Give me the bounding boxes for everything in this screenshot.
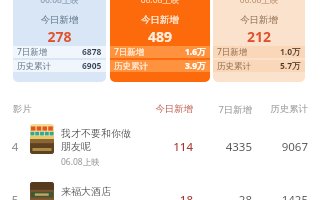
button[interactable]: 06.08上映 [213, 0, 305, 82]
staticText: 18 [133, 192, 193, 200]
staticText: 06.08上映 [13, 0, 106, 6]
staticText: 7日新增 [114, 46, 185, 58]
staticText: 6905 [82, 60, 102, 72]
staticText: 278 [13, 27, 106, 46]
staticText: 历史累计 [248, 103, 308, 115]
staticText: 来福大酒店 [61, 185, 111, 198]
staticText: 今日新增 [13, 14, 106, 26]
staticText: 1425 [248, 192, 308, 200]
staticText: 28 [192, 192, 252, 200]
staticText: 212 [213, 27, 305, 46]
staticText: 7日新增 [192, 103, 252, 116]
staticText: 5.7万 [280, 60, 301, 72]
staticText: 7日新增 [17, 46, 82, 58]
staticText: 6878 [82, 46, 102, 58]
staticText: 5 [0, 192, 30, 200]
staticText: 历史累计 [114, 61, 185, 72]
staticText: 影片 [13, 103, 32, 115]
staticText: 489 [110, 27, 210, 46]
staticText: 3.9万 [185, 60, 206, 72]
button[interactable]: 5 [0, 175, 320, 200]
staticText: 1.0万 [280, 46, 301, 58]
button[interactable]: 06.08上映 [110, 0, 210, 82]
staticText: 06.08上映 [213, 0, 305, 6]
staticText: 4 [0, 139, 30, 155]
staticText: 4335 [192, 139, 252, 155]
button[interactable]: 06.08上映 [13, 0, 106, 82]
staticText: 今日新增 [213, 14, 305, 26]
staticText: 06.08上映 [110, 0, 210, 6]
staticText: 114 [133, 139, 193, 155]
staticText: 历史累计 [217, 61, 280, 72]
staticText: 06.08上映 [61, 156, 100, 168]
staticText: 我才不要和你做朋友呢 [61, 127, 135, 153]
staticText: 1.6万 [185, 46, 206, 58]
staticText: 今日新增 [110, 14, 210, 26]
staticText: 9067 [248, 139, 308, 155]
staticText: 7日新增 [217, 46, 280, 58]
button[interactable]: 4 [0, 117, 320, 175]
staticText: 历史累计 [17, 61, 82, 72]
staticText: 今日新增 [133, 103, 193, 115]
